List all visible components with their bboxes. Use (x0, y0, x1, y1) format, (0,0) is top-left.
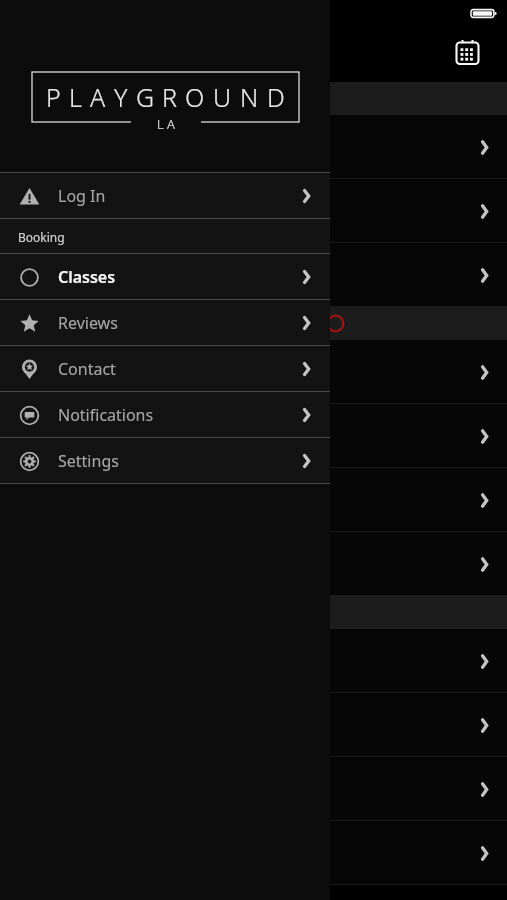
staticText: P (46, 80, 61, 114)
button[interactable] (0, 404, 507, 468)
staticText: Log In (58, 185, 106, 207)
button[interactable] (0, 340, 507, 404)
staticText: Contact (58, 358, 116, 380)
staticText: N (240, 80, 259, 114)
button[interactable]: Log In (0, 173, 330, 219)
button[interactable] (0, 693, 507, 757)
staticText: G (136, 80, 155, 114)
staticText: Notifications (58, 404, 154, 426)
button[interactable]: Settings (0, 438, 330, 484)
button[interactable]: Notifications (0, 392, 330, 438)
staticText: U (213, 80, 232, 114)
button[interactable] (0, 243, 507, 307)
button[interactable] (0, 532, 507, 596)
button[interactable] (0, 179, 507, 243)
staticText: L A (157, 115, 175, 133)
button[interactable] (0, 757, 507, 821)
button[interactable] (0, 821, 507, 885)
staticText: Reviews (58, 312, 118, 334)
button[interactable]: Classes (0, 254, 330, 300)
staticText: Classes (58, 266, 116, 288)
button[interactable]: Calendar (448, 33, 486, 71)
staticText: D (267, 80, 285, 114)
button[interactable]: Contact (0, 346, 330, 392)
staticText: R (162, 80, 177, 114)
staticText: Y (114, 80, 128, 114)
button[interactable]: Reviews (0, 300, 330, 346)
staticText: Settings (58, 450, 119, 472)
button[interactable] (0, 115, 507, 179)
staticText: O (185, 80, 205, 114)
staticText: A (90, 80, 106, 114)
staticText: L (69, 80, 82, 114)
button[interactable] (0, 629, 507, 693)
button[interactable] (0, 468, 507, 532)
staticText: Booking (18, 229, 65, 245)
